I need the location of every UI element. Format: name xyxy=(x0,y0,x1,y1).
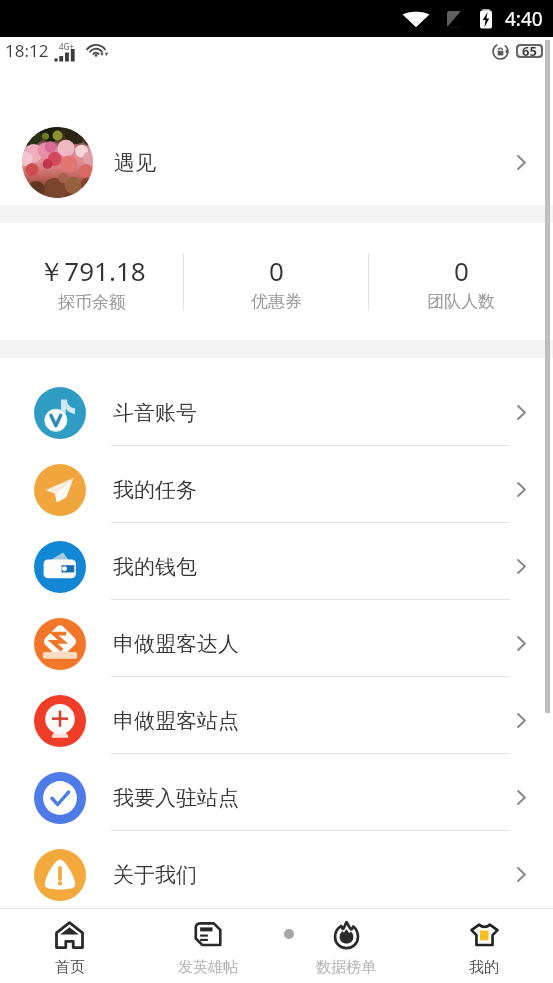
button[interactable]: 数据榜单 xyxy=(277,909,415,983)
button[interactable]: 0 xyxy=(184,253,368,310)
button[interactable]: 我的钱包 xyxy=(0,528,553,605)
staticText: ￥791.18 xyxy=(38,253,146,289)
staticText: 65 xyxy=(522,42,537,60)
staticText: 发英雄帖 xyxy=(178,958,238,977)
button[interactable]: 申做盟客站点 xyxy=(0,682,553,759)
staticText: 0 xyxy=(454,253,469,288)
button[interactable]: 遇见 xyxy=(0,64,553,205)
button[interactable]: 我的任务 xyxy=(0,451,553,528)
staticText: 首页 xyxy=(55,958,85,977)
staticText: 我要入驻站点 xyxy=(113,785,239,811)
button[interactable]: 首页 xyxy=(0,909,139,983)
staticText: 我的 xyxy=(469,958,499,977)
staticText: 关于我们 xyxy=(113,862,197,888)
button[interactable]: 我的 xyxy=(415,909,553,983)
button[interactable]: 斗音账号 xyxy=(0,374,553,451)
staticText: 优惠券 xyxy=(251,291,302,310)
staticText: 探币余额 xyxy=(58,292,126,310)
staticText: 遇见 xyxy=(114,150,156,176)
button[interactable]: 我要入驻站点 xyxy=(0,759,553,836)
button[interactable]: ￥791.18 xyxy=(0,253,183,310)
staticText: 4:40 xyxy=(505,6,543,32)
staticText: 我的钱包 xyxy=(113,554,197,580)
staticText: 申做盟客达人 xyxy=(113,631,239,657)
staticText: 斗音账号 xyxy=(113,400,197,426)
staticText: 数据榜单 xyxy=(316,958,376,977)
staticText: 我的任务 xyxy=(113,477,197,503)
staticText: 申做盟客站点 xyxy=(113,708,239,734)
staticText: 4G+ xyxy=(59,41,74,52)
staticText: 团队人数 xyxy=(427,291,495,310)
staticText: 0 xyxy=(269,253,284,288)
button[interactable]: 关于我们 xyxy=(0,836,553,913)
button[interactable]: 0 xyxy=(369,253,553,310)
button[interactable]: 申做盟客达人 xyxy=(0,605,553,682)
staticText: 18:12 xyxy=(5,39,49,62)
button[interactable]: 发英雄帖 xyxy=(139,909,277,983)
